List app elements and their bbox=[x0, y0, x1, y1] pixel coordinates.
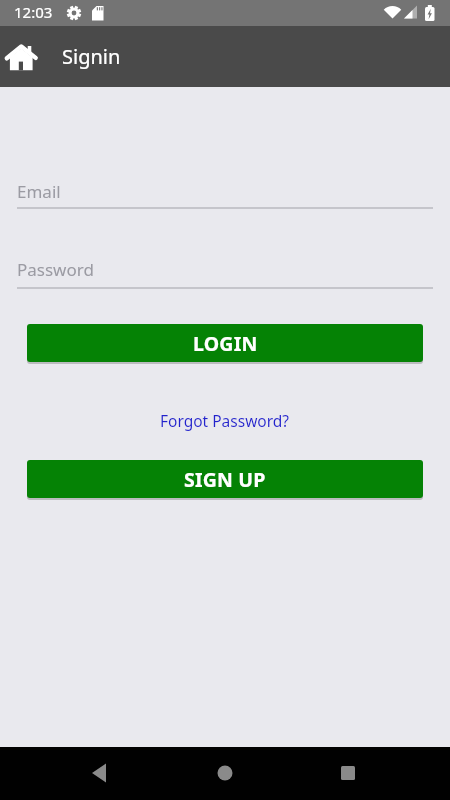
button[interactable] bbox=[0, 33, 48, 81]
staticText: SIGN UP bbox=[184, 466, 266, 493]
staticText: Email bbox=[17, 180, 61, 203]
staticText: 12:03 bbox=[14, 2, 53, 22]
staticText: Signin bbox=[62, 43, 121, 70]
button[interactable] bbox=[0, 747, 150, 800]
button[interactable] bbox=[300, 747, 450, 800]
staticText: Password bbox=[17, 258, 94, 281]
staticText: LOGIN bbox=[193, 330, 258, 357]
button[interactable]: Forgot Password? bbox=[160, 410, 290, 431]
button[interactable]: SIGN UP bbox=[27, 460, 423, 498]
button[interactable] bbox=[150, 747, 300, 800]
button[interactable]: LOGIN bbox=[27, 324, 423, 362]
